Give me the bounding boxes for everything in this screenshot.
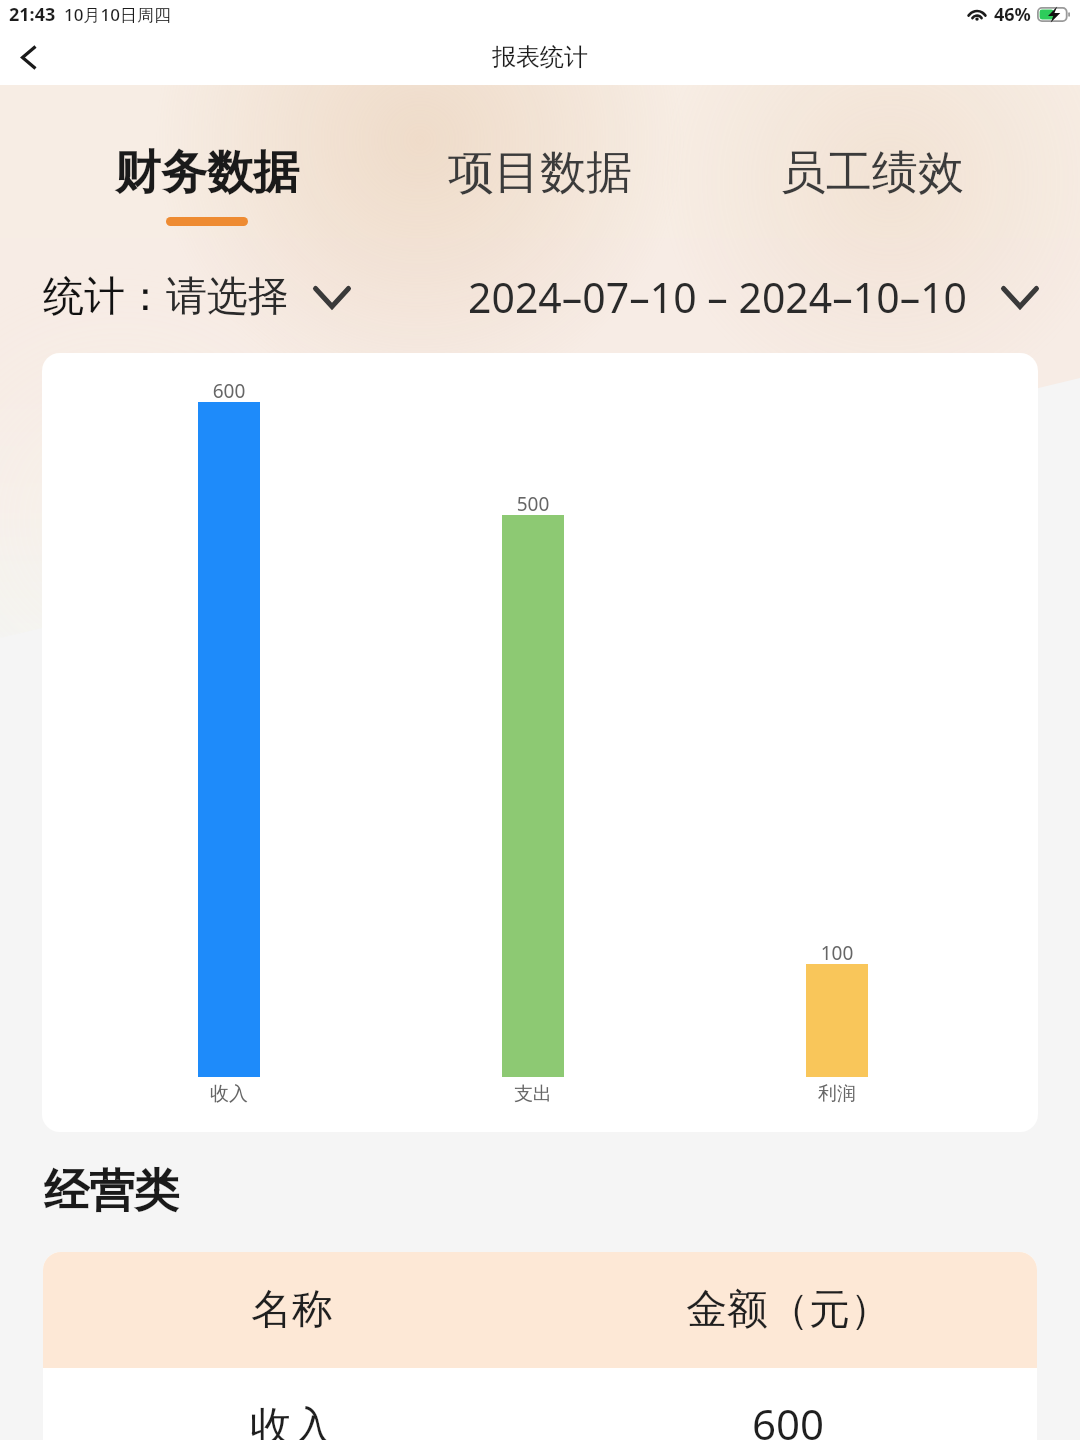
staticText: 经营类 — [44, 1163, 179, 1220]
staticText: 请选择 — [166, 271, 289, 323]
staticText: 报表统计 — [0, 42, 1080, 72]
staticText: 500 — [463, 491, 603, 517]
staticText: 项目数据 — [448, 144, 632, 202]
staticText: 600 — [159, 378, 299, 404]
staticText: 46% — [994, 2, 1031, 27]
staticText: 21:43 — [9, 2, 56, 27]
staticText: 600 — [752, 1395, 825, 1440]
staticText: 收入 — [250, 1401, 334, 1440]
staticText: 收入 — [159, 1082, 299, 1106]
staticText: 100 — [767, 940, 907, 966]
button[interactable]: 员工绩效 — [752, 144, 992, 244]
button[interactable]: 项目数据 — [420, 144, 660, 244]
staticText: 2024–07–10 – 2024–10–10 — [468, 269, 968, 325]
staticText: 金额（元） — [686, 1284, 891, 1336]
button[interactable]: 2024–07–10 – 2024–10–10 — [468, 266, 1039, 328]
button[interactable]: 统计： — [43, 266, 351, 328]
staticText: 财务数据 — [115, 144, 299, 202]
staticText: 员工绩效 — [780, 144, 964, 202]
staticText: 统计： — [43, 271, 166, 323]
staticText: 名称 — [251, 1284, 333, 1336]
button[interactable]: 收入 — [43, 1368, 1037, 1440]
staticText: 利润 — [767, 1082, 907, 1106]
button[interactable]: 财务数据 — [87, 144, 327, 244]
button[interactable]: Back — [0, 37, 58, 77]
staticText: 支出 — [463, 1082, 603, 1106]
staticText: 10月10日周四 — [64, 3, 171, 26]
